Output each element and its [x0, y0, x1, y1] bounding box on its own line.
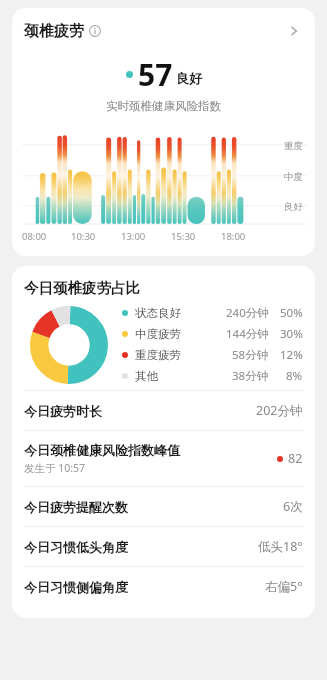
staticText: 低头18°: [258, 538, 303, 555]
button[interactable]: 今日颈椎健康风险指数峰值: [12, 431, 315, 486]
staticText: 今日疲劳提醒次数: [24, 499, 128, 515]
button[interactable]: 中度疲劳: [122, 326, 303, 342]
staticText: 15:30: [171, 230, 196, 243]
staticText: 良好: [284, 201, 303, 213]
staticText: 13:00: [121, 230, 146, 243]
staticText: 重度: [284, 140, 303, 152]
button[interactable]: 状态良好: [122, 305, 303, 321]
button[interactable]: 重度疲劳: [122, 347, 303, 363]
button[interactable]: 今日疲劳时长: [12, 391, 315, 430]
button[interactable]: 今日疲劳提醒次数: [12, 487, 315, 526]
staticText: 今日疲劳时长: [24, 403, 102, 419]
staticText: 08:00: [22, 230, 47, 243]
button[interactable]: 其他: [122, 368, 303, 384]
staticText: 今日颈椎疲劳占比: [24, 279, 140, 297]
staticText: 状态良好: [135, 306, 181, 320]
staticText: 12%: [280, 347, 303, 363]
staticText: 其他: [135, 369, 158, 383]
staticText: 中度: [284, 171, 303, 183]
staticText: 240分钟: [226, 305, 269, 321]
staticText: 58分钟: [232, 347, 269, 363]
staticText: 8%: [286, 368, 303, 384]
staticText: 右偏5°: [265, 578, 303, 595]
staticText: 实时颈椎健康风险指数: [106, 99, 221, 113]
button[interactable]: More details: [283, 20, 305, 42]
staticText: 10:30: [71, 230, 96, 243]
staticText: 重度疲劳: [135, 348, 181, 362]
staticText: 今日习惯低头角度: [24, 539, 128, 555]
staticText: 57: [138, 54, 173, 95]
staticText: 30%: [280, 326, 303, 342]
staticText: 82: [288, 450, 303, 467]
staticText: 颈椎疲劳: [24, 22, 84, 41]
staticText: 202分钟: [256, 402, 303, 419]
staticText: 良好: [176, 70, 202, 86]
staticText: 今日习惯侧偏角度: [24, 579, 128, 595]
staticText: 144分钟: [226, 326, 269, 342]
button[interactable]: 今日习惯侧偏角度: [12, 567, 315, 606]
staticText: 中度疲劳: [135, 327, 181, 341]
staticText: 今日颈椎健康风险指数峰值: [24, 442, 180, 458]
staticText: 发生于 10:57: [24, 461, 86, 475]
button[interactable]: 颈椎疲劳: [12, 8, 315, 44]
button[interactable]: 今日习惯低头角度: [12, 527, 315, 566]
staticText: 18:00: [221, 230, 246, 243]
staticText: 38分钟: [232, 368, 269, 384]
staticText: 6次: [283, 498, 303, 515]
staticText: 50%: [280, 305, 303, 321]
